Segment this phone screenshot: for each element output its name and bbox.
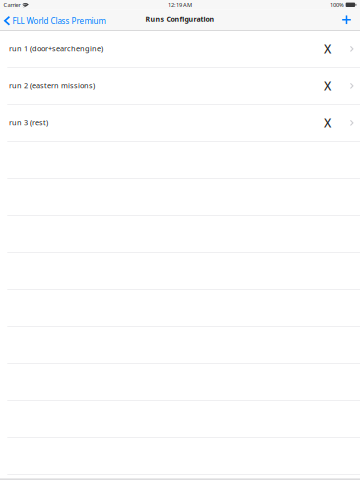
button[interactable]: run 3 (rest) <box>0 105 319 141</box>
staticText: X <box>324 115 331 131</box>
button[interactable]: run 2 (eastern missions) <box>0 68 319 104</box>
staticText: Runs Configuration <box>145 14 214 24</box>
button[interactable]: Delete run 2 (eastern missions) <box>319 68 336 104</box>
staticText: 12:19 AM <box>168 1 192 9</box>
staticText: X <box>324 78 331 94</box>
button[interactable]: Delete run 3 (rest) <box>319 105 336 141</box>
staticText: Carrier <box>4 1 21 9</box>
staticText: FLL World Class Premium <box>13 15 106 26</box>
button[interactable]: run 3 (rest) <box>0 105 360 142</box>
button[interactable]: run 1 (door+searchengine) <box>0 31 319 67</box>
staticText: X <box>324 41 331 57</box>
staticText: run 2 (eastern missions) <box>9 80 95 90</box>
button[interactable]: Delete run 1 (door+searchengine) <box>319 31 336 67</box>
staticText: run 3 (rest) <box>9 117 48 127</box>
staticText: run 1 (door+searchengine) <box>9 43 103 53</box>
button[interactable]: Add run <box>334 10 360 31</box>
staticText: 100% <box>330 1 344 9</box>
button[interactable]: run 1 (door+searchengine) <box>0 31 360 68</box>
button[interactable]: FLL World Class Premium <box>0 10 106 31</box>
button[interactable]: run 2 (eastern missions) <box>0 68 360 105</box>
